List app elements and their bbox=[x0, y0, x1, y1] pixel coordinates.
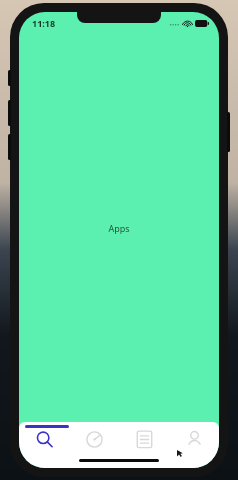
staticText: Apps bbox=[108, 222, 130, 234]
button[interactable]: Profile bbox=[169, 422, 219, 456]
button[interactable]: List bbox=[119, 422, 169, 456]
staticText: 11:18 bbox=[32, 17, 56, 29]
button[interactable]: Search bbox=[19, 422, 69, 456]
button[interactable]: Dashboard bbox=[69, 422, 119, 456]
